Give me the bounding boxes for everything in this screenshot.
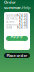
staticText: $1.20 xyxy=(19,20,28,23)
staticText: Apply promo xyxy=(10,33,23,44)
button[interactable]: Apply promo xyxy=(6,36,28,41)
button[interactable]: Place order xyxy=(4,53,30,58)
staticText: Place order xyxy=(6,53,27,58)
staticText: Total xyxy=(6,26,12,29)
staticText: -$3.00 xyxy=(18,23,28,26)
staticText: $24.70 xyxy=(17,26,28,29)
staticText: Order summary xyxy=(4,0,22,15)
staticText: $2.50 xyxy=(19,17,28,20)
staticText: Help xyxy=(22,5,30,10)
staticText: Discount xyxy=(6,23,18,26)
staticText: Delivery xyxy=(6,17,17,20)
button[interactable]: Help xyxy=(22,5,30,10)
staticText: Service xyxy=(6,20,15,23)
staticText: Subtotal xyxy=(6,14,17,17)
staticText: $24.00 xyxy=(17,14,28,17)
